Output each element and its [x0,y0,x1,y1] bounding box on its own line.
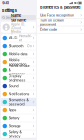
staticText: Mobile data [8,52,27,56]
button[interactable]: Mobile connection [1,58,36,66]
button[interactable]: Name Surname [0,22,36,33]
staticText: Notifications [8,92,29,96]
button[interactable]: Wi-Fi [1,34,36,42]
staticText: On [27,44,32,48]
button[interactable]: Battery [1,114,36,122]
button[interactable]: Safety & privacy [1,130,36,138]
staticText: 9:41 [2,1,9,5]
staticText: Settings [2,8,17,13]
button[interactable]: Enter code [37,26,84,33]
staticText: & Purchases [11,34,28,41]
staticText: Name Surname [11,13,26,22]
staticText: Enter code [40,28,57,32]
staticText: Wi-Fi [8,36,17,40]
staticText: Mobile connection [8,58,26,66]
staticText: Sound [8,84,18,88]
staticText: Apple ID, iCloud, Media [11,23,25,33]
button[interactable]: Display brightness [1,74,36,82]
staticText: Search [6,15,17,19]
button[interactable]: Points of use & [1,66,36,74]
staticText: Turn on screen password [40,18,64,26]
button[interactable]: Use Face recognition [37,12,84,19]
staticText: Biometrics & [8,98,28,102]
button[interactable]: Storage [1,122,36,130]
staticText: Points of use & [8,64,29,72]
button[interactable]: Apps [1,106,36,114]
button[interactable]: Biometrics & [1,98,36,106]
staticText: Display brightness [8,74,25,82]
button[interactable]: Bluetooth [1,42,36,50]
staticText: Biometrics & password [40,5,80,10]
button[interactable]: Mobile data [1,50,36,58]
staticText: HomeNet [19,34,32,42]
staticText: Apps [8,108,16,112]
staticText: Use Face recognition [40,13,74,17]
button[interactable]: Turn on screen password [37,19,84,26]
staticText: Bluetooth [8,44,23,48]
button[interactable]: Notifications [1,90,36,98]
button[interactable]: Sound [1,82,36,90]
staticText: password [8,102,24,106]
staticText: Safety & privacy [8,130,21,138]
staticText: Battery [8,116,19,120]
staticText: wallpaper [8,72,24,76]
staticText: Storage [8,124,20,128]
button[interactable]: Search [0,15,36,20]
